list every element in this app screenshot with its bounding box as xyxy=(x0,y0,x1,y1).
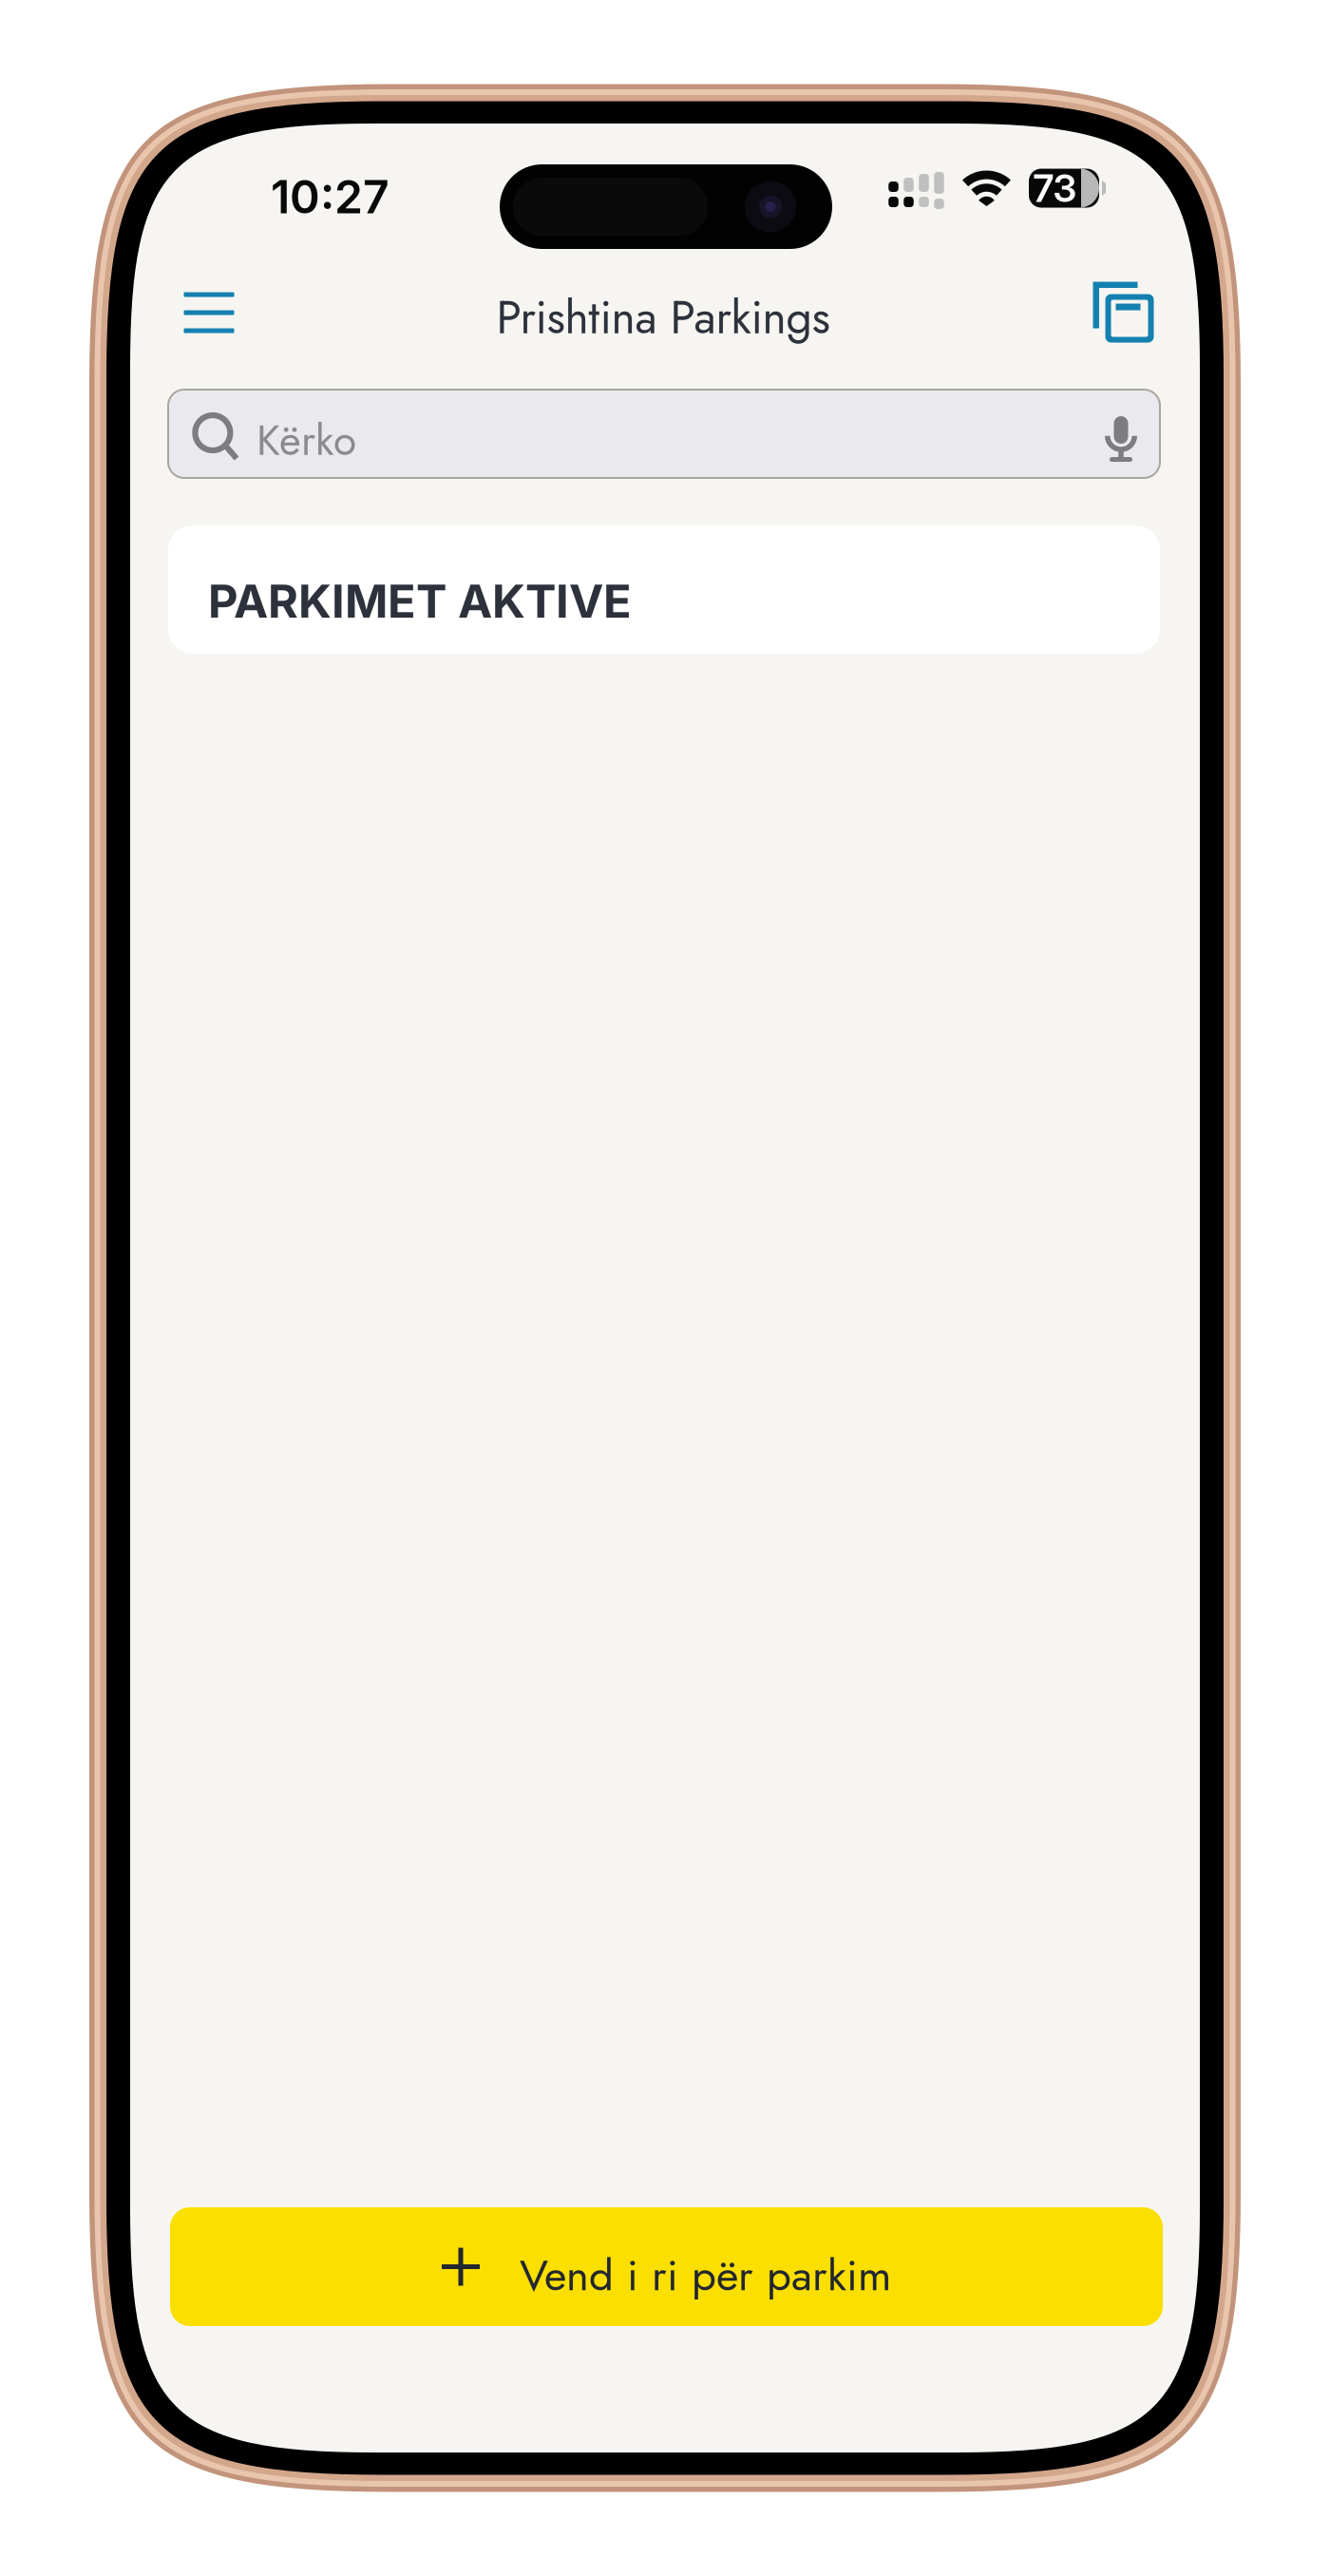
staticText: Vend i ri për parkim xyxy=(520,2244,891,2306)
staticText: Kërko xyxy=(256,410,356,471)
button[interactable]: Vend i ri për parkim xyxy=(170,2207,1163,2326)
button[interactable]: Menu xyxy=(161,266,257,353)
staticText: 10:27 xyxy=(271,169,389,224)
staticText: 73 xyxy=(1033,165,1077,211)
button[interactable]: PARKIMET AKTIVE xyxy=(168,525,1160,654)
staticText: Prishtina Parkings xyxy=(496,284,830,350)
button[interactable]: Kërko xyxy=(168,390,1160,478)
staticText: PARKIMET AKTIVE xyxy=(208,573,632,629)
button[interactable]: Duplicate xyxy=(1069,266,1166,353)
